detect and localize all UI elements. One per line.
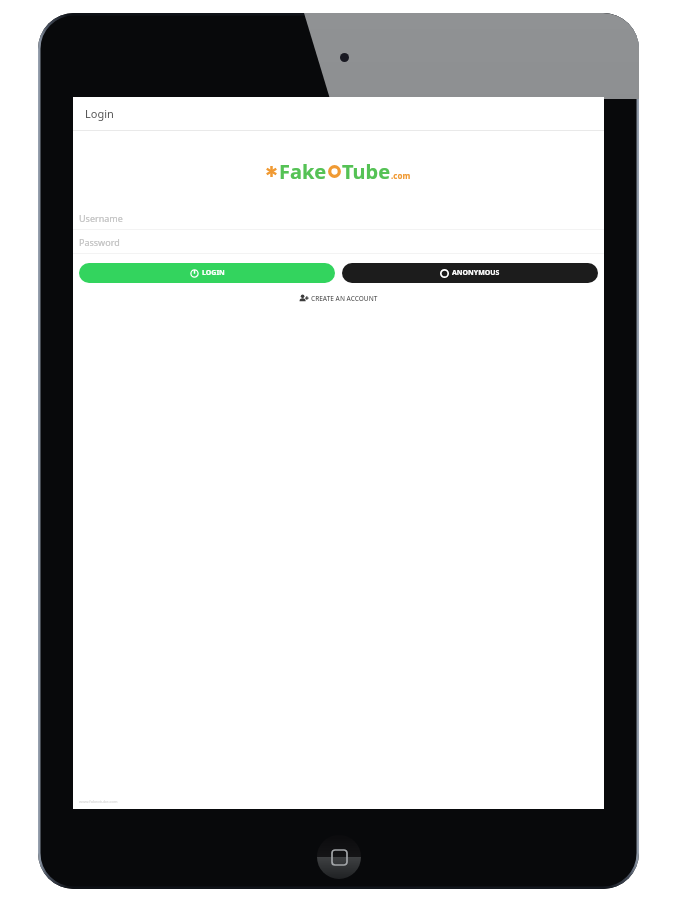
- staticText: LOGIN: [202, 268, 225, 278]
- staticText: ANONYMOUS: [452, 268, 500, 278]
- staticText: CREATE AN ACCOUNT: [311, 294, 378, 303]
- button[interactable]: Username: [73, 206, 604, 229]
- staticText: Username: [79, 212, 123, 224]
- staticText: .com: [391, 170, 411, 181]
- button[interactable]: LOGIN: [79, 263, 335, 283]
- button[interactable]: Password: [73, 230, 604, 253]
- staticText: www.fakeotube.com: [79, 799, 118, 804]
- button[interactable]: CREATE AN ACCOUNT: [295, 292, 382, 305]
- staticText: Login: [85, 106, 114, 121]
- staticText: Password: [79, 236, 120, 248]
- button[interactable]: ANONYMOUS: [342, 263, 598, 283]
- staticText: Tube: [342, 158, 391, 185]
- staticText: Fake: [279, 158, 327, 185]
- button[interactable]: Home: [317, 835, 361, 879]
